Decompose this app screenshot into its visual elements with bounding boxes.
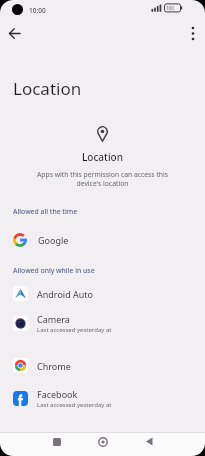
- staticText: Google: [38, 234, 69, 246]
- staticText: 10:00: [29, 6, 46, 15]
- button[interactable]: Facebook: [0, 385, 205, 412]
- button[interactable]: [126, 432, 172, 451]
- staticText: Chrome: [37, 360, 71, 372]
- staticText: Last accessed yesterday at: [37, 401, 112, 409]
- button[interactable]: Chrome: [0, 352, 205, 379]
- button[interactable]: Camera: [0, 310, 205, 337]
- staticText: Allowed all the time: [13, 207, 78, 216]
- staticText: Apps with this permission can access thi…: [0, 170, 205, 188]
- button[interactable]: [34, 432, 80, 451]
- button[interactable]: [80, 432, 126, 451]
- button[interactable]: [5, 24, 25, 44]
- staticText: Camera: [37, 313, 70, 325]
- staticText: Allowed only while in use: [13, 266, 95, 275]
- button[interactable]: [185, 24, 201, 44]
- staticText: Last accessed yesterday at: [37, 326, 112, 334]
- staticText: Facebook: [37, 388, 78, 400]
- staticText: Location: [13, 77, 82, 100]
- staticText: 100: [166, 5, 174, 11]
- staticText: Android Auto: [37, 288, 94, 300]
- button[interactable]: Android Auto: [0, 280, 205, 307]
- button[interactable]: Google: [0, 226, 205, 253]
- staticText: Location: [0, 150, 205, 164]
